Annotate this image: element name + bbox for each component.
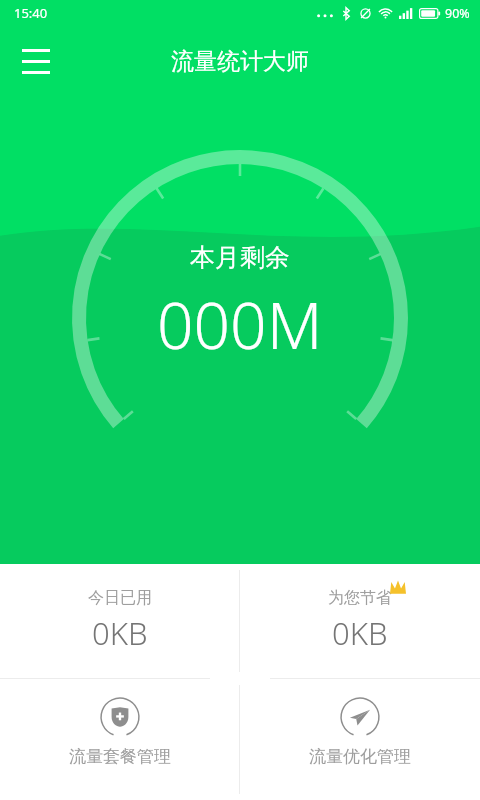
staticText: 本月剩余 <box>190 242 290 273</box>
staticText: 0KB <box>332 612 388 654</box>
button[interactable]: 流量优化管理 <box>240 679 480 800</box>
staticText: 流量统计大师 <box>171 47 309 76</box>
staticText: 15:40 <box>14 4 48 22</box>
staticText: 流量优化管理 <box>309 746 411 767</box>
button[interactable]: 流量套餐管理 <box>0 679 239 800</box>
staticText: 90% <box>445 5 470 22</box>
staticText: 今日已用 <box>88 588 152 608</box>
button[interactable]: 为您节省 <box>240 564 480 678</box>
button[interactable]: 今日已用 <box>0 564 239 678</box>
staticText: 000M <box>157 281 323 368</box>
staticText: 为您节省 <box>328 588 392 608</box>
staticText: 流量套餐管理 <box>69 746 171 767</box>
staticText: 0KB <box>92 612 148 654</box>
button[interactable]: Menu <box>8 33 64 89</box>
